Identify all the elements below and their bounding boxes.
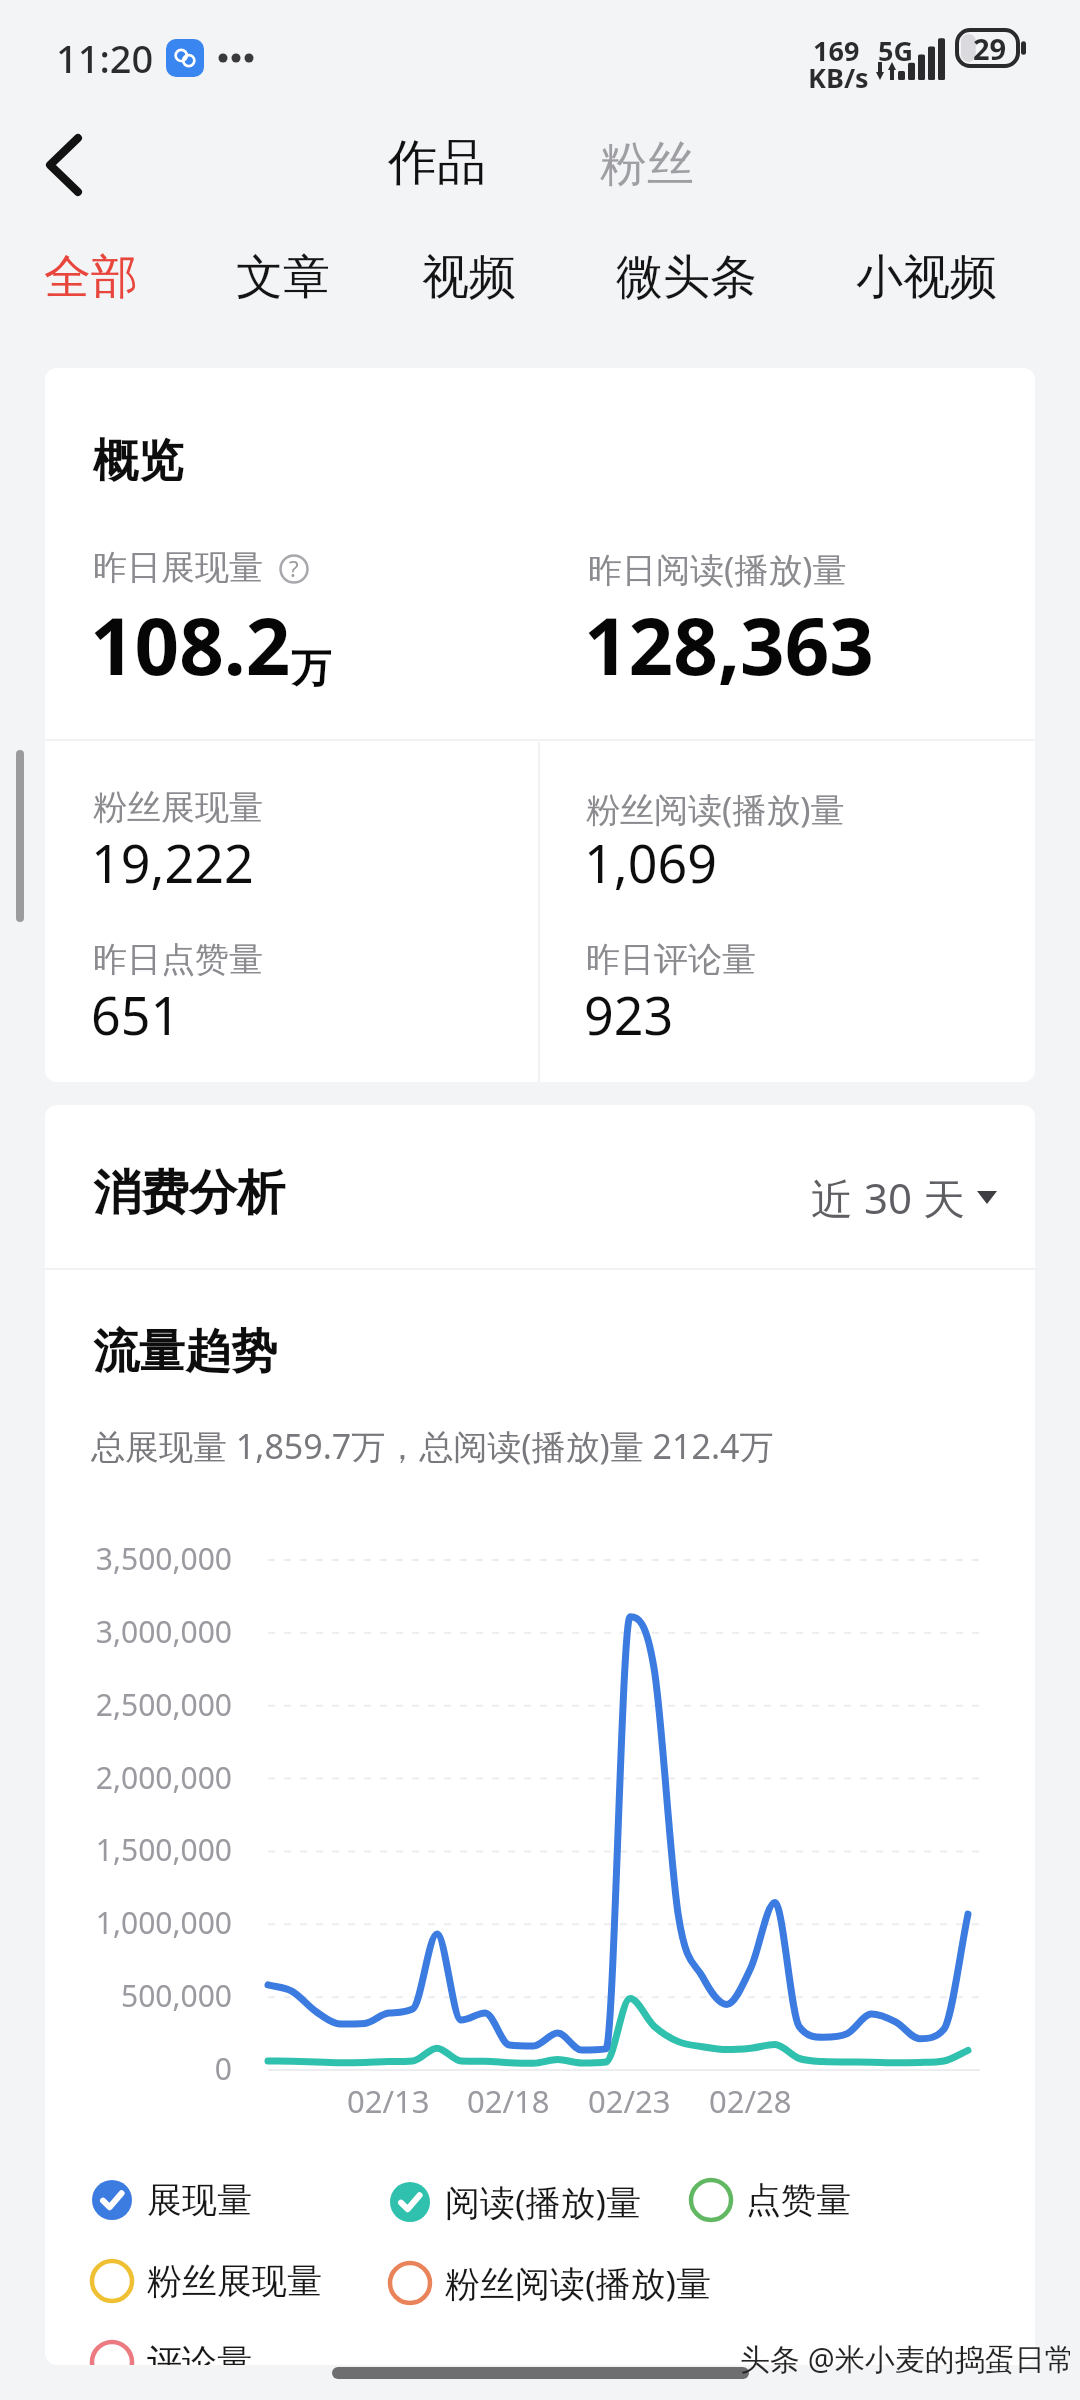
staticText: 108.2: [90, 592, 291, 698]
button[interactable]: 评论量: [90, 2334, 252, 2365]
staticText: 小视频: [856, 248, 997, 307]
staticText: 昨日点赞量: [93, 938, 263, 981]
button[interactable]: 点赞量: [689, 2172, 851, 2228]
staticText: 1,000,000: [95, 1902, 232, 1943]
staticText: 1,500,000: [95, 1829, 232, 1870]
staticText: 2,000,000: [95, 1757, 232, 1798]
staticText: 粉丝: [600, 135, 694, 194]
staticText: 923: [584, 979, 674, 1050]
button[interactable]: 说明: [279, 554, 309, 584]
staticText: 3,500,000: [95, 1538, 232, 1579]
staticText: 5G: [878, 32, 913, 69]
staticText: 阅读(播放)量: [445, 2178, 642, 2226]
staticText: 头条 @米小麦的捣蛋日常: [740, 2338, 1070, 2379]
button[interactable]: 全部: [30, 234, 152, 321]
button[interactable]: 粉丝展现量: [90, 2253, 322, 2309]
button[interactable]: 小视频: [842, 234, 1011, 321]
staticText: 29: [973, 29, 1007, 68]
staticText: ?: [289, 553, 299, 583]
staticText: 流量趋势: [93, 1323, 277, 1381]
button[interactable]: 视频: [408, 234, 530, 321]
button[interactable]: 阅读(播放)量: [388, 2172, 642, 2232]
staticText: 展现量: [147, 2178, 252, 2222]
staticText: 169: [813, 32, 860, 69]
staticText: 万: [291, 643, 331, 693]
staticText: 02/18: [467, 2080, 550, 2122]
staticText: 651: [91, 979, 181, 1050]
staticText: 粉丝展现量: [93, 786, 263, 829]
staticText: 点赞量: [746, 2178, 851, 2222]
staticText: 19,222: [91, 827, 254, 898]
staticText: 0: [214, 2048, 232, 2089]
staticText: 概览: [93, 433, 183, 490]
button[interactable]: 文章: [222, 234, 344, 321]
button[interactable]: 微头条: [602, 234, 771, 321]
staticText: 2,500,000: [95, 1684, 232, 1725]
button[interactable]: 粉丝阅读(播放)量: [388, 2253, 712, 2313]
staticText: 128,363: [584, 592, 874, 698]
staticText: 评论量: [147, 2340, 252, 2365]
staticText: 昨日展现量: [93, 546, 263, 589]
staticText: 1,069: [584, 827, 717, 898]
staticText: 02/13: [347, 2080, 430, 2122]
staticText: 昨日评论量: [586, 938, 756, 981]
staticText: 粉丝阅读(播放)量: [445, 2259, 712, 2307]
staticText: 作品: [388, 132, 486, 194]
staticText: 粉丝阅读(播放)量: [586, 786, 845, 832]
button[interactable]: 展现量: [90, 2172, 252, 2228]
staticText: 昨日阅读(播放)量: [588, 546, 847, 592]
button[interactable]: 近 30 天: [805, 1163, 1003, 1232]
staticText: 总展现量 1,859.7万，总阅读(播放)量 212.4万: [91, 1423, 774, 1469]
staticText: 近 30 天: [811, 1169, 965, 1226]
staticText: 11:20: [56, 32, 154, 84]
button[interactable]: 粉丝: [594, 129, 700, 200]
staticText: KB/s: [808, 59, 869, 96]
staticText: 02/23: [588, 2080, 671, 2122]
staticText: 500,000: [121, 1975, 232, 2016]
button[interactable]: 作品: [382, 126, 492, 200]
staticText: 粉丝展现量: [147, 2259, 322, 2303]
staticText: 消费分析: [93, 1163, 285, 1223]
staticText: 视频: [422, 248, 516, 307]
button[interactable]: Back: [16, 117, 112, 213]
staticText: 文章: [236, 248, 330, 307]
staticText: 3,000,000: [95, 1611, 232, 1652]
staticText: 02/28: [709, 2080, 792, 2122]
staticText: 全部: [44, 248, 138, 307]
staticText: 微头条: [616, 248, 757, 307]
